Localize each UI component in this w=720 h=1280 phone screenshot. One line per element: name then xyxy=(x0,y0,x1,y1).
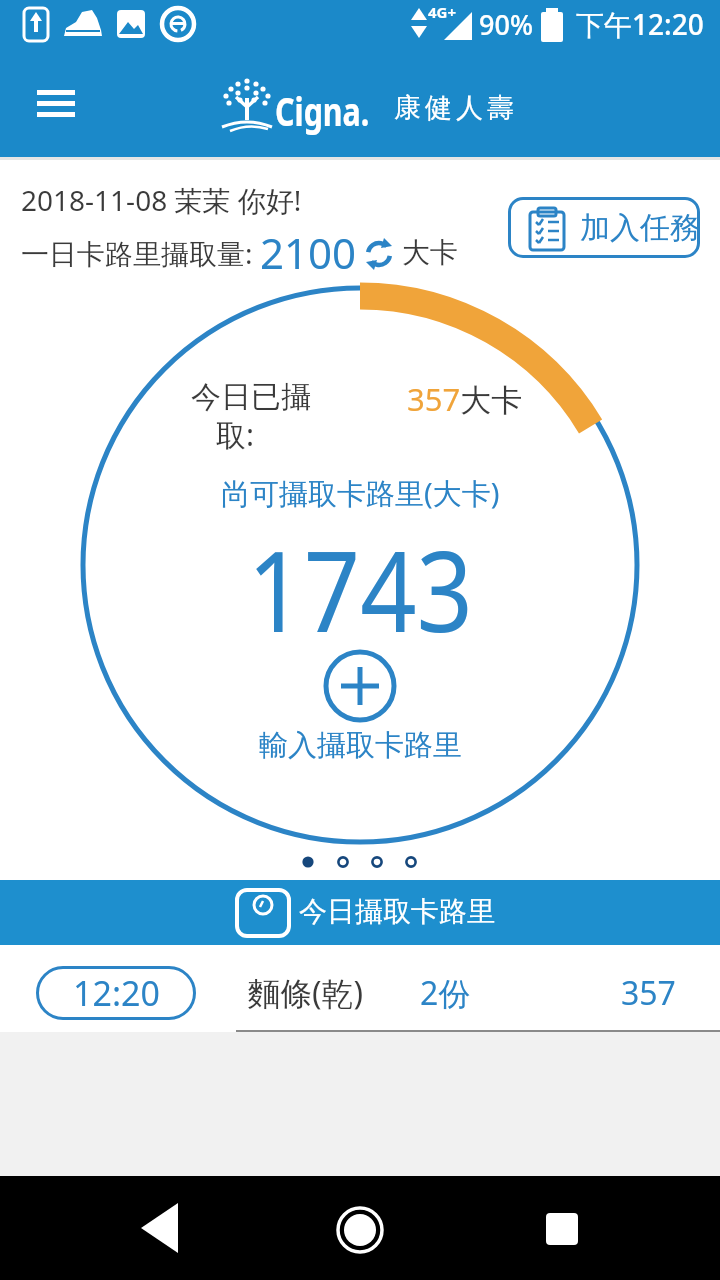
staticText: 一日卡路里攝取量: xyxy=(21,234,260,272)
staticText: 357 xyxy=(621,971,676,1015)
button[interactable]: 加入任務 xyxy=(508,197,700,258)
staticText: 麵條(乾) xyxy=(248,971,364,1015)
button[interactable] xyxy=(22,75,88,131)
staticText: 取: xyxy=(216,414,255,455)
staticText: 今日攝取卡路里 xyxy=(299,894,495,929)
staticText: 4G+ xyxy=(428,2,457,22)
staticText: 加入任務 xyxy=(580,209,700,247)
staticText: 今日已攝 xyxy=(191,378,311,416)
staticText: 12:20 xyxy=(73,970,160,1016)
button[interactable] xyxy=(120,1188,200,1268)
staticText: 康健人壽 xyxy=(392,91,516,125)
button[interactable] xyxy=(520,1188,600,1268)
button[interactable]: 輸入攝取卡路里 xyxy=(259,727,462,764)
staticText: 1743 xyxy=(247,512,474,665)
staticText: 357大卡 xyxy=(407,378,523,420)
staticText: 2018-11-08 茉茉 你好! xyxy=(21,181,302,219)
button[interactable] xyxy=(322,648,398,724)
staticText: 尚可攝取卡路里(大卡) xyxy=(221,473,500,513)
staticText: 90% xyxy=(479,6,533,43)
button[interactable]: 今日攝取卡路里 xyxy=(0,880,720,945)
staticText: 2100 xyxy=(260,224,357,281)
button[interactable] xyxy=(320,1188,400,1268)
staticText: 2份 xyxy=(420,971,471,1015)
staticText: 大卡 xyxy=(402,235,458,270)
staticText: Cigna. xyxy=(275,84,370,137)
button[interactable]: 12:20 xyxy=(0,962,720,1024)
staticText: 下午12:20 xyxy=(576,5,704,43)
